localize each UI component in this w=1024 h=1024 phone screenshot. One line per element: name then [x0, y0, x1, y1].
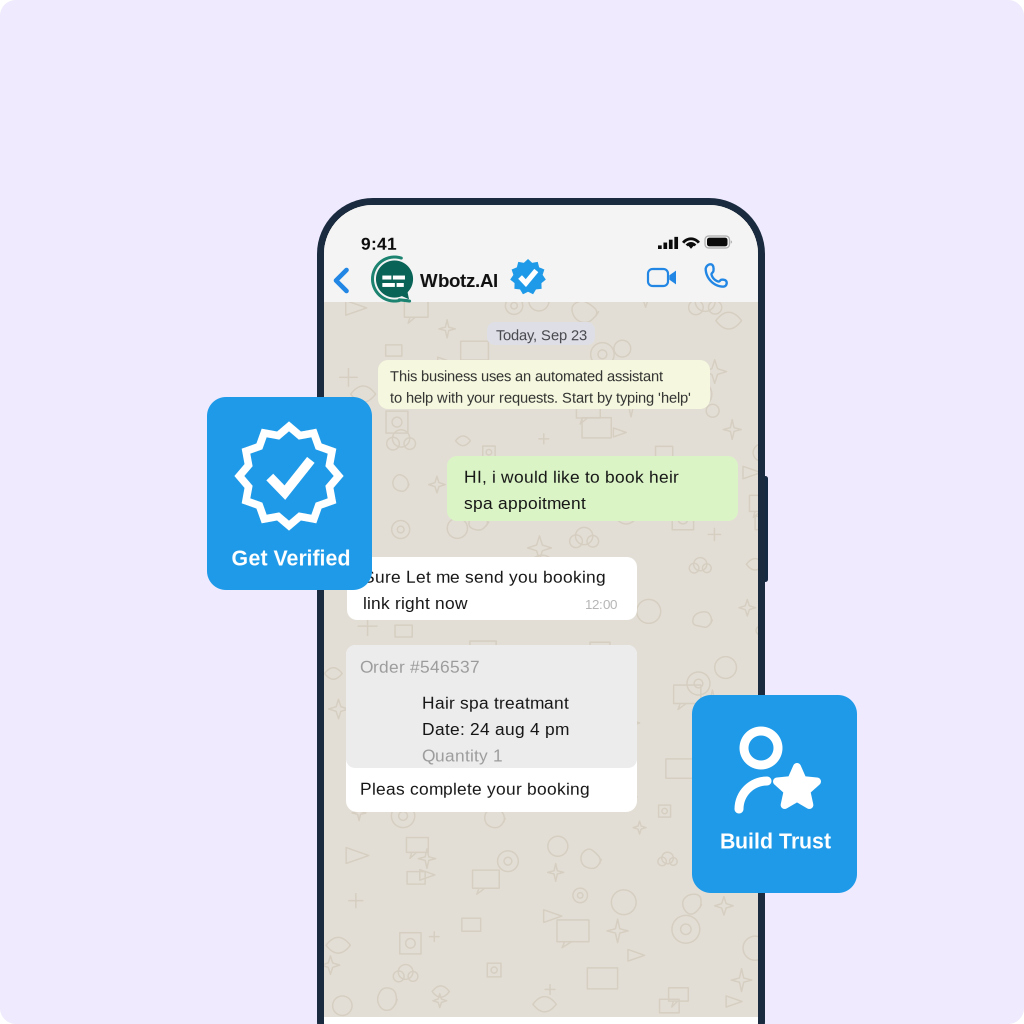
button[interactable]: Voice call	[693, 253, 738, 298]
staticText: Today, Sep 23	[496, 327, 587, 343]
staticText: Quantity 1	[422, 746, 503, 765]
staticText: Wbotz.AI	[420, 270, 498, 291]
staticText: link right now	[363, 593, 468, 613]
staticText: 9:41	[361, 234, 397, 253]
staticText: Get Verified	[231, 546, 350, 570]
staticText: Hair spa treatmant	[422, 693, 569, 712]
staticText: to help with your requests. Start by typ…	[390, 389, 691, 406]
staticText: 12:00	[585, 597, 617, 612]
button[interactable]: Video call	[637, 258, 687, 297]
button[interactable]: Back	[324, 258, 359, 303]
staticText: spa appoitment	[464, 493, 586, 513]
staticText: Pleas complete your booking	[360, 779, 590, 798]
button[interactable]: Get Verified	[207, 397, 372, 590]
button[interactable]: Build Trust	[692, 695, 857, 893]
staticText: Order #546537	[360, 657, 480, 676]
staticText: Sure Let me send you booking	[363, 567, 606, 586]
staticText: Build Trust	[720, 829, 831, 853]
staticText: Date: 24 aug 4 pm	[422, 719, 569, 739]
staticText: This business uses an automated assistan…	[390, 368, 663, 384]
staticText: HI, i would like to book heir	[464, 467, 679, 486]
